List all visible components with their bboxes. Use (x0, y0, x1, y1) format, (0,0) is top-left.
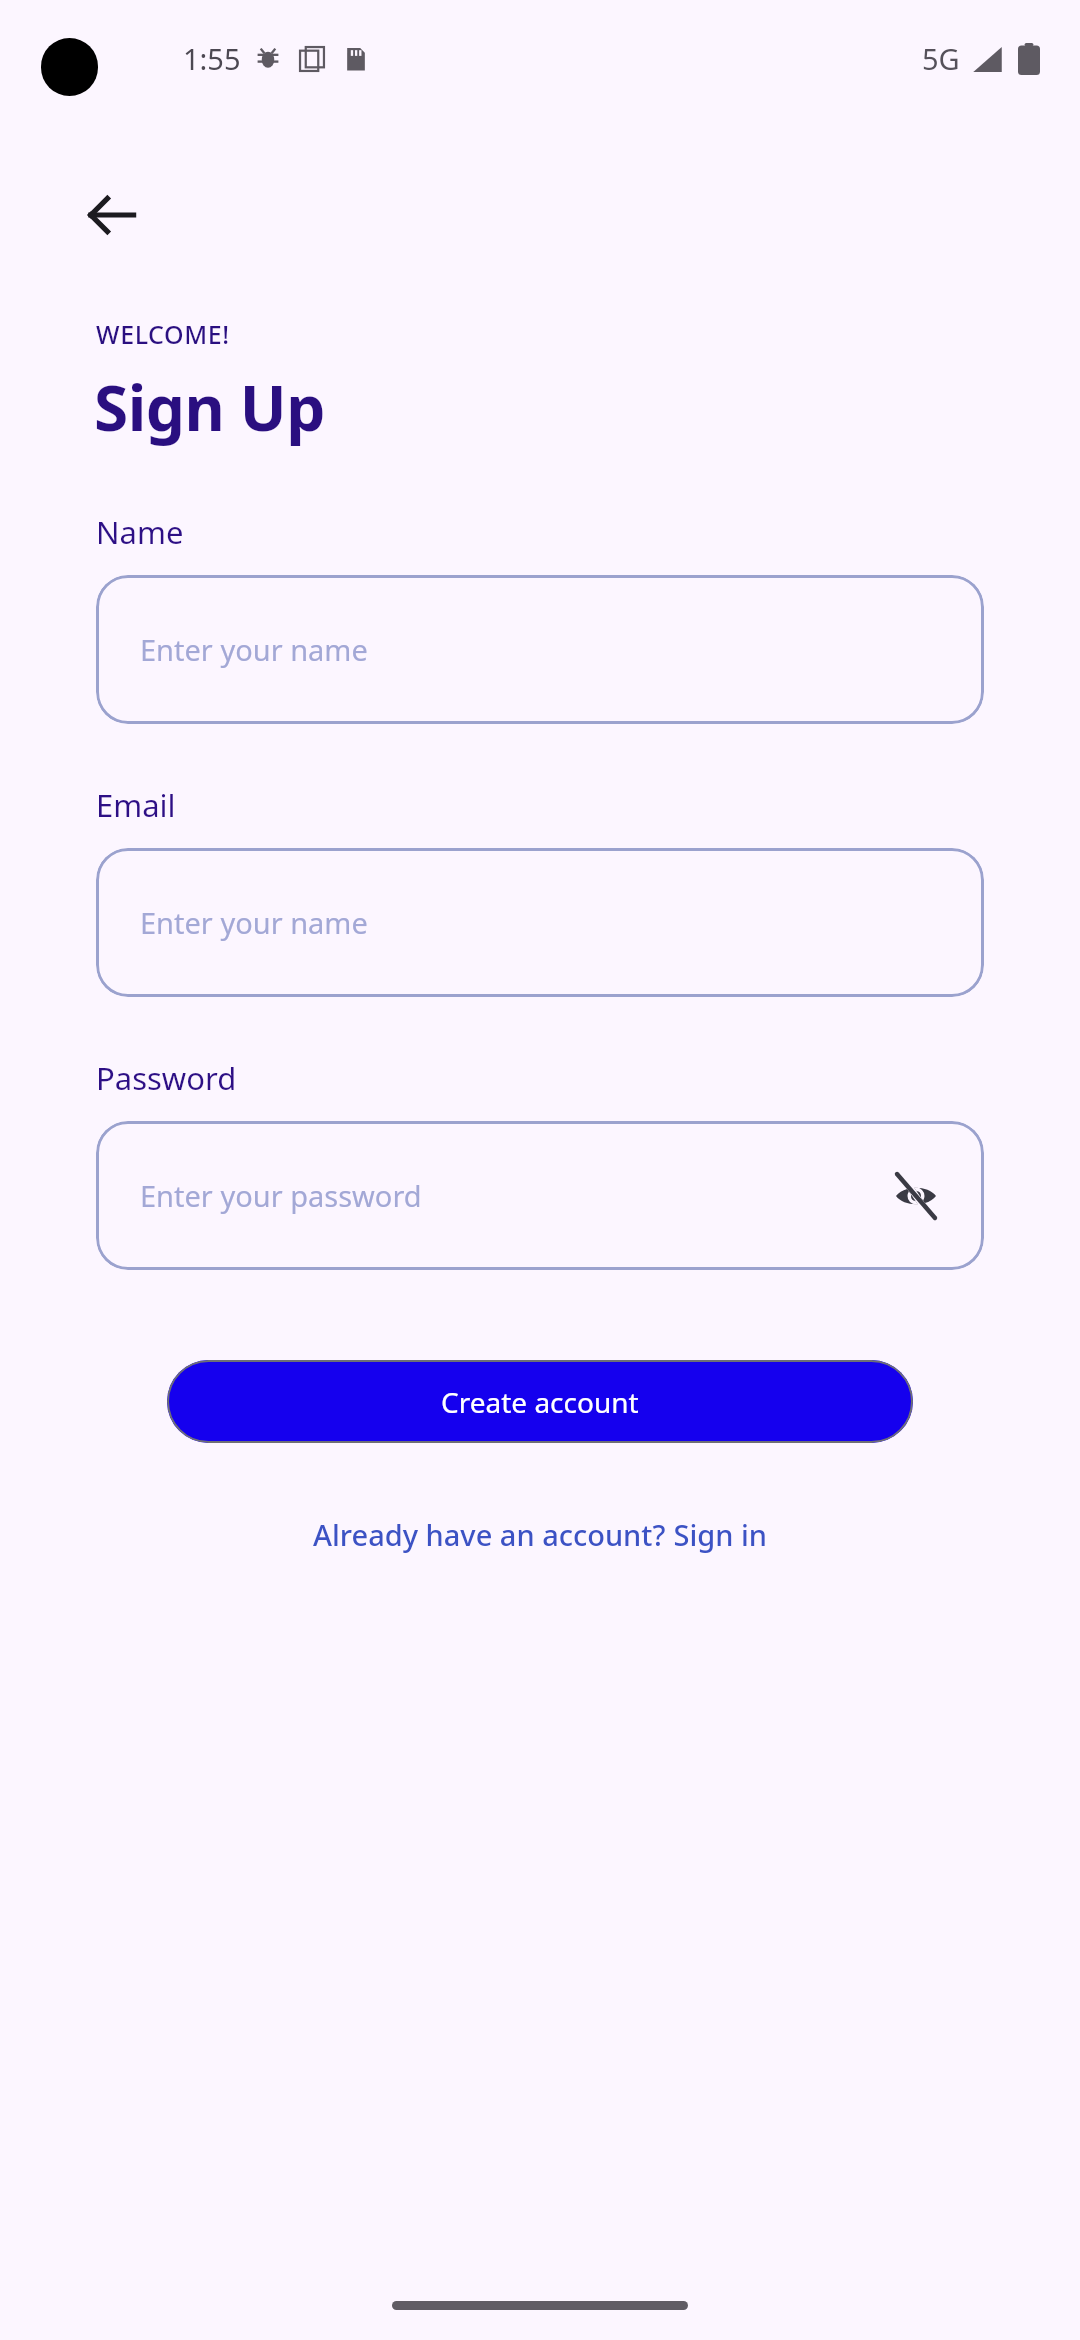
staticText: Name (96, 511, 184, 553)
button[interactable]: Already have an account? (0, 1515, 1080, 1554)
button[interactable]: Back (72, 175, 152, 255)
staticText: Sign Up (94, 365, 325, 449)
staticText: WELCOME! (96, 317, 230, 351)
button[interactable]: Toggle password visibility (888, 1168, 944, 1224)
staticText: Password (96, 1057, 237, 1099)
staticText: Enter your password (140, 1176, 422, 1215)
staticText: Enter your name (140, 903, 368, 942)
staticText: Email (96, 784, 176, 826)
button[interactable]: Enter your name (96, 575, 984, 724)
staticText: 5G (922, 39, 960, 78)
button[interactable]: Enter your password (96, 1121, 984, 1270)
button[interactable]: Create account (167, 1360, 913, 1443)
staticText: Sign in (666, 1515, 768, 1554)
staticText: 1:55 (183, 39, 241, 78)
button[interactable]: Enter your name (96, 848, 984, 997)
staticText: Create account (441, 1383, 639, 1421)
staticText: Already have an account? (313, 1515, 666, 1554)
staticText: Enter your name (140, 630, 368, 669)
